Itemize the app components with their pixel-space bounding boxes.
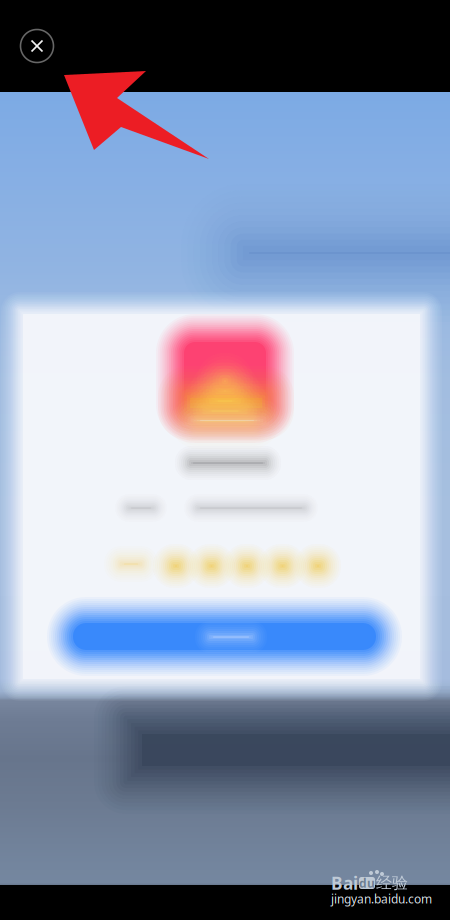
button[interactable]: Close — [19, 28, 55, 64]
staticText: jingyan.baidu.com — [331, 891, 432, 907]
staticText: 经验 — [376, 873, 408, 893]
staticText: Bai — [331, 871, 358, 894]
staticText: du — [359, 875, 375, 891]
